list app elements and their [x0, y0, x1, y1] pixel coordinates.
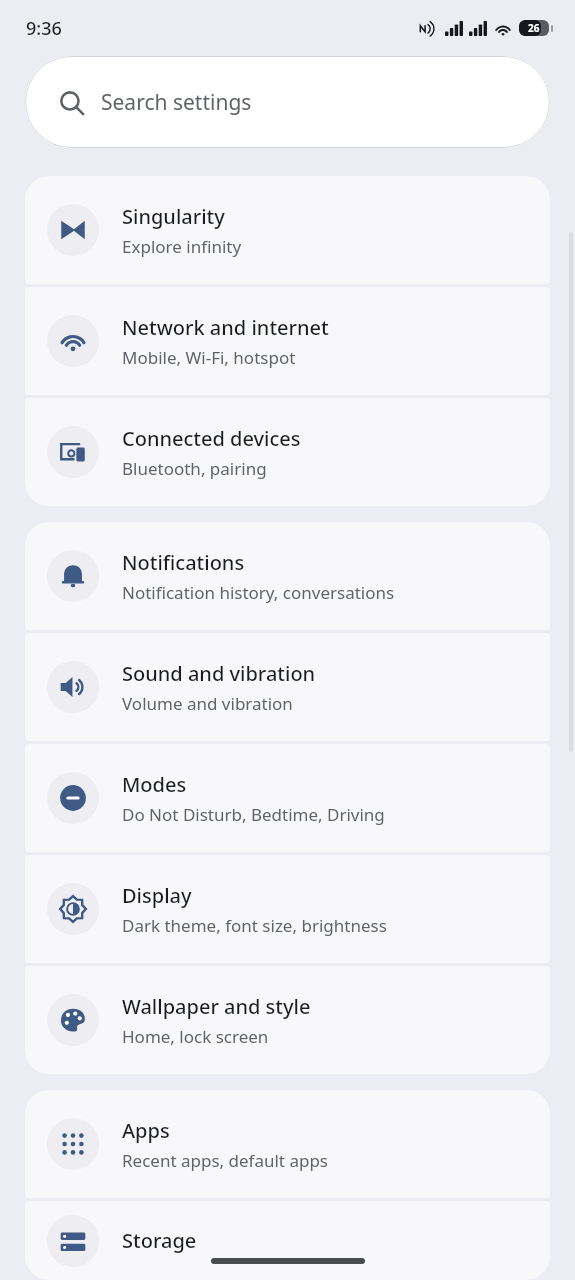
staticText: 26: [528, 21, 540, 35]
staticText: 9:36: [26, 16, 62, 41]
staticText: Explore infinity: [122, 235, 242, 258]
staticText: Bluetooth, pairing: [122, 457, 267, 480]
button[interactable]: Sound and vibration: [25, 633, 550, 741]
staticText: Volume and vibration: [122, 692, 293, 715]
staticText: Recent apps, default apps: [122, 1149, 329, 1172]
staticText: Connected devices: [122, 425, 301, 452]
button[interactable]: Search settings: [25, 56, 550, 148]
staticText: Display: [122, 882, 192, 909]
staticText: Mobile, Wi-Fi, hotspot: [122, 346, 296, 369]
button[interactable]: Apps: [25, 1090, 550, 1198]
button[interactable]: Network and internet: [25, 287, 550, 395]
staticText: Home, lock screen: [122, 1025, 269, 1048]
staticText: Wallpaper and style: [122, 993, 311, 1020]
staticText: Apps: [122, 1117, 170, 1144]
staticText: Do Not Disturb, Bedtime, Driving: [122, 803, 385, 826]
staticText: Sound and vibration: [122, 660, 316, 687]
staticText: Search settings: [101, 88, 252, 117]
button[interactable]: Notifications: [25, 522, 550, 630]
button[interactable]: Connected devices: [25, 398, 550, 506]
button[interactable]: Singularity: [25, 176, 550, 284]
staticText: Notifications: [122, 549, 245, 576]
staticText: Network and internet: [122, 314, 329, 341]
staticText: Notification history, conversations: [122, 581, 395, 604]
button[interactable]: Storage: [25, 1201, 550, 1280]
staticText: Storage: [122, 1227, 197, 1254]
staticText: Dark theme, font size, brightness: [122, 914, 387, 937]
button[interactable]: Wallpaper and style: [25, 966, 550, 1074]
button[interactable]: Display: [25, 855, 550, 963]
button[interactable]: Modes: [25, 744, 550, 852]
staticText: Singularity: [122, 203, 225, 230]
staticText: Modes: [122, 771, 187, 798]
